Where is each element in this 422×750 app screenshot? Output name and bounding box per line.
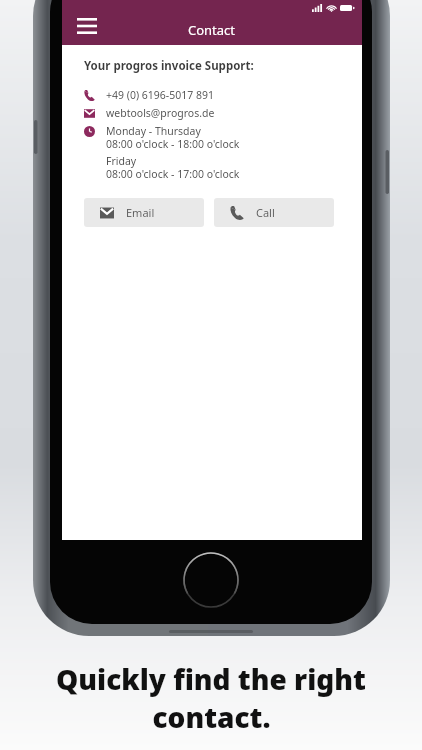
staticText: Call: [256, 205, 275, 220]
button[interactable]: Email: [84, 198, 204, 227]
staticText: Email: [126, 205, 155, 220]
staticText: 08:00 o'clock - 18:00 o'clock: [106, 137, 240, 151]
staticText: Contact: [188, 21, 236, 39]
staticText: Monday - Thursday: [106, 124, 201, 138]
staticText: 08:00 o'clock - 17:00 o'clock: [106, 167, 240, 181]
button[interactable]: Call: [214, 198, 334, 227]
button[interactable]: Menu: [70, 9, 104, 43]
staticText: +49 (0) 6196-5017 891: [106, 88, 214, 102]
staticText: Friday: [106, 154, 137, 168]
staticText: webtools@progros.de: [106, 106, 215, 120]
staticText: contact.: [152, 698, 271, 736]
staticText: Quickly find the right: [56, 660, 366, 698]
staticText: Your progros invoice Support:: [84, 58, 254, 74]
